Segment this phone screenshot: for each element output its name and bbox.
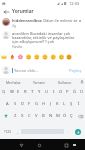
button[interactable]: M — [54, 110, 61, 122]
button[interactable]: Send — [75, 129, 81, 135]
button[interactable]: Back — [15, 139, 27, 150]
staticText: C — [28, 113, 31, 119]
staticText: B — [42, 113, 45, 119]
button[interactable]: Backspace — [75, 110, 85, 122]
staticText: L — [63, 101, 66, 107]
button[interactable]: Home — [33, 139, 45, 150]
staticText: X — [21, 113, 24, 119]
staticText: ?123 — [4, 130, 11, 134]
button[interactable]: Merhaba — [0, 78, 26, 86]
staticText: 12:03 — [69, 1, 80, 6]
button[interactable]: İ — [75, 98, 82, 110]
button[interactable]: U — [43, 86, 50, 98]
button[interactable]: Switch keyboard — [69, 139, 79, 150]
staticText: W — [10, 89, 14, 95]
button[interactable]: J — [47, 98, 54, 110]
button[interactable]: Tamam — [26, 78, 52, 86]
button[interactable]: Quick reaction — [49, 52, 56, 62]
button[interactable]: N — [47, 110, 54, 122]
button[interactable]: Y — [36, 86, 43, 98]
staticText: Paylaş — [69, 68, 82, 73]
button[interactable]: K — [54, 98, 61, 110]
button[interactable]: C — [26, 110, 33, 122]
staticText: R — [24, 89, 27, 95]
button[interactable]: Ö — [61, 110, 68, 122]
staticText: N — [49, 113, 53, 119]
button[interactable]: Ü — [78, 86, 85, 98]
staticText: Odun ile evlenir ar — [43, 18, 78, 23]
staticText: Yanıtla — [12, 45, 22, 49]
staticText: Yorum ekle... — [14, 68, 39, 73]
staticText: Q — [2, 89, 6, 95]
staticText: Ş — [70, 101, 73, 107]
button[interactable]: Kullanıcı — [52, 78, 78, 86]
button[interactable]: Quick reaction — [14, 52, 21, 62]
staticText: Ğ — [73, 89, 77, 95]
button[interactable]: G — [33, 98, 40, 110]
staticText: S — [14, 101, 17, 107]
staticText: D — [21, 101, 25, 107]
button[interactable]: E — [15, 86, 22, 98]
staticText: P — [66, 89, 69, 95]
button[interactable]: Quick reaction — [56, 52, 63, 62]
button[interactable]: S — [11, 98, 19, 110]
button[interactable]: Q — [0, 86, 8, 98]
button[interactable]: . — [64, 122, 71, 141]
button[interactable]: , — [14, 122, 21, 141]
button[interactable]: A — [3, 98, 11, 110]
staticText: Kullanıcı — [58, 80, 72, 85]
button[interactable]: R — [22, 86, 29, 98]
button[interactable]: Quick reaction — [42, 52, 49, 62]
button[interactable]: Back — [0, 7, 12, 16]
button[interactable]: Quick reaction — [28, 52, 35, 62]
button[interactable]: Quick reaction — [7, 52, 14, 62]
staticText: A — [6, 101, 9, 107]
button[interactable]: O — [57, 86, 64, 98]
button[interactable]: X — [19, 110, 26, 122]
staticText: Z — [14, 113, 17, 119]
staticText: , — [17, 129, 19, 134]
button[interactable]: Recent apps — [60, 139, 72, 150]
button[interactable]: Ş — [68, 98, 75, 110]
staticText: U — [45, 89, 49, 95]
staticText: T — [31, 89, 34, 95]
button[interactable]: Quick reaction — [35, 52, 42, 62]
button[interactable]: I — [50, 86, 57, 98]
button[interactable]: Paylaş — [68, 66, 83, 75]
button[interactable]: V — [33, 110, 40, 122]
button[interactable]: Ğ — [71, 86, 78, 98]
button[interactable]: Quick reaction — [0, 52, 7, 62]
button[interactable]: Ç — [68, 110, 75, 122]
staticText: Yorumlar — [12, 8, 34, 15]
button[interactable]: B — [40, 110, 47, 122]
staticText: Ö — [63, 113, 67, 119]
button[interactable]: W — [8, 86, 15, 98]
button[interactable]: hiddenrandbox — [0, 16, 85, 30]
button[interactable]: D — [19, 98, 26, 110]
staticText: G — [35, 101, 39, 107]
staticText: F — [28, 101, 31, 107]
staticText: Y — [38, 89, 41, 95]
button[interactable]: acanlibin Buradaki insanlar çok kazandıl… — [0, 30, 85, 52]
button[interactable]: Shift — [0, 110, 11, 122]
staticText: O — [59, 89, 63, 95]
staticText: 2g — [12, 24, 16, 28]
staticText: M — [56, 113, 60, 119]
button[interactable]: Voice input — [78, 78, 85, 86]
button[interactable]: Z — [11, 110, 19, 122]
staticText: İ — [78, 101, 80, 107]
button[interactable]: L — [61, 98, 68, 110]
button[interactable]: ?123 — [0, 122, 14, 141]
button[interactable]: T — [29, 86, 36, 98]
staticText: . — [67, 129, 69, 134]
staticText: I — [53, 89, 55, 95]
staticText: K — [56, 101, 59, 107]
button[interactable]: P — [64, 86, 71, 98]
button[interactable]: H — [40, 98, 47, 110]
button[interactable]: Quick reaction — [21, 52, 28, 62]
staticText: Ü — [80, 89, 84, 95]
button[interactable]: F — [26, 98, 33, 110]
staticText: J — [50, 101, 52, 107]
staticText: E — [17, 89, 20, 95]
